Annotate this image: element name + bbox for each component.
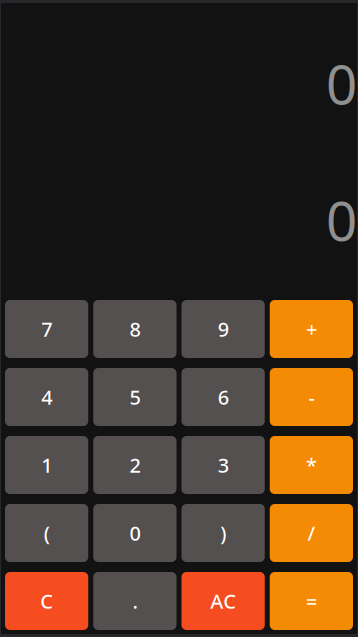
staticText: AC	[210, 588, 236, 614]
button[interactable]: AC	[181, 572, 265, 630]
button[interactable]: =	[270, 572, 353, 630]
button[interactable]: 3	[181, 436, 265, 494]
staticText: 0	[326, 184, 357, 256]
button[interactable]: *	[270, 436, 353, 494]
staticText: 2	[129, 452, 140, 478]
button[interactable]: .	[93, 572, 176, 630]
staticText: .	[132, 588, 137, 614]
button[interactable]: (	[5, 504, 88, 562]
button[interactable]: 8	[93, 300, 176, 358]
button[interactable]: 4	[5, 368, 88, 426]
staticText: 8	[129, 316, 140, 342]
button[interactable]: 1	[5, 436, 88, 494]
staticText: 4	[41, 384, 52, 410]
staticText: =	[306, 588, 317, 614]
button[interactable]: +	[270, 300, 353, 358]
staticText: -	[308, 384, 314, 410]
staticText: C	[40, 588, 53, 614]
button[interactable]: 9	[181, 300, 265, 358]
staticText: 0	[129, 520, 140, 546]
staticText: 0	[326, 47, 357, 120]
staticText: 9	[218, 316, 229, 342]
button[interactable]: 0	[93, 504, 176, 562]
button[interactable]: )	[181, 504, 265, 562]
staticText: 5	[129, 384, 140, 410]
button[interactable]: /	[270, 504, 353, 562]
staticText: )	[220, 520, 226, 546]
staticText: 1	[41, 452, 52, 478]
button[interactable]: 5	[93, 368, 176, 426]
button[interactable]: C	[5, 572, 88, 630]
button[interactable]: 2	[93, 436, 176, 494]
staticText: *	[306, 452, 317, 478]
staticText: (	[44, 520, 50, 546]
button[interactable]: 6	[181, 368, 265, 426]
button[interactable]: 7	[5, 300, 88, 358]
staticText: 7	[41, 316, 52, 342]
staticText: +	[306, 316, 317, 342]
staticText: 3	[218, 452, 229, 478]
staticText: /	[307, 520, 315, 546]
staticText: 6	[218, 384, 229, 410]
button[interactable]: -	[270, 368, 353, 426]
